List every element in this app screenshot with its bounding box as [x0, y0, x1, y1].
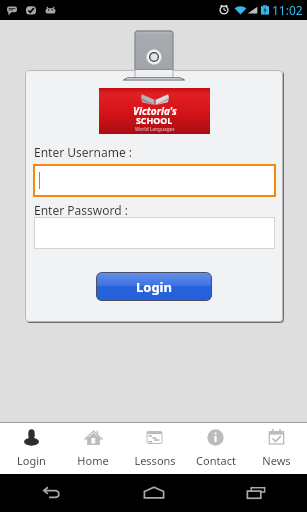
- button[interactable]: Lessons: [124, 423, 185, 474]
- staticText: World Languages: [135, 126, 175, 132]
- button[interactable]: News: [246, 423, 307, 474]
- staticText: Login: [136, 278, 172, 296]
- staticText: Login: [17, 453, 46, 468]
- staticText: Home: [77, 453, 109, 468]
- button[interactable]: Home: [103, 474, 205, 512]
- button[interactable]: Contact: [185, 423, 246, 474]
- staticText: Lessons: [134, 453, 176, 468]
- button[interactable]: Back: [0, 474, 103, 512]
- button[interactable]: Login: [96, 272, 212, 301]
- staticText: Enter Password :: [34, 202, 128, 218]
- button[interactable]: Home: [62, 423, 124, 474]
- staticText: 11:02: [272, 2, 303, 18]
- staticText: Victoria's: [133, 104, 177, 118]
- staticText: Contact: [196, 453, 236, 468]
- staticText: News: [262, 453, 291, 468]
- staticText: SCHOOL: [136, 115, 173, 127]
- staticText: Enter Username :: [34, 144, 132, 160]
- button[interactable]: [34, 217, 275, 249]
- button[interactable]: Recent apps: [205, 474, 307, 512]
- button[interactable]: Login: [0, 423, 62, 474]
- button[interactable]: [33, 164, 276, 197]
